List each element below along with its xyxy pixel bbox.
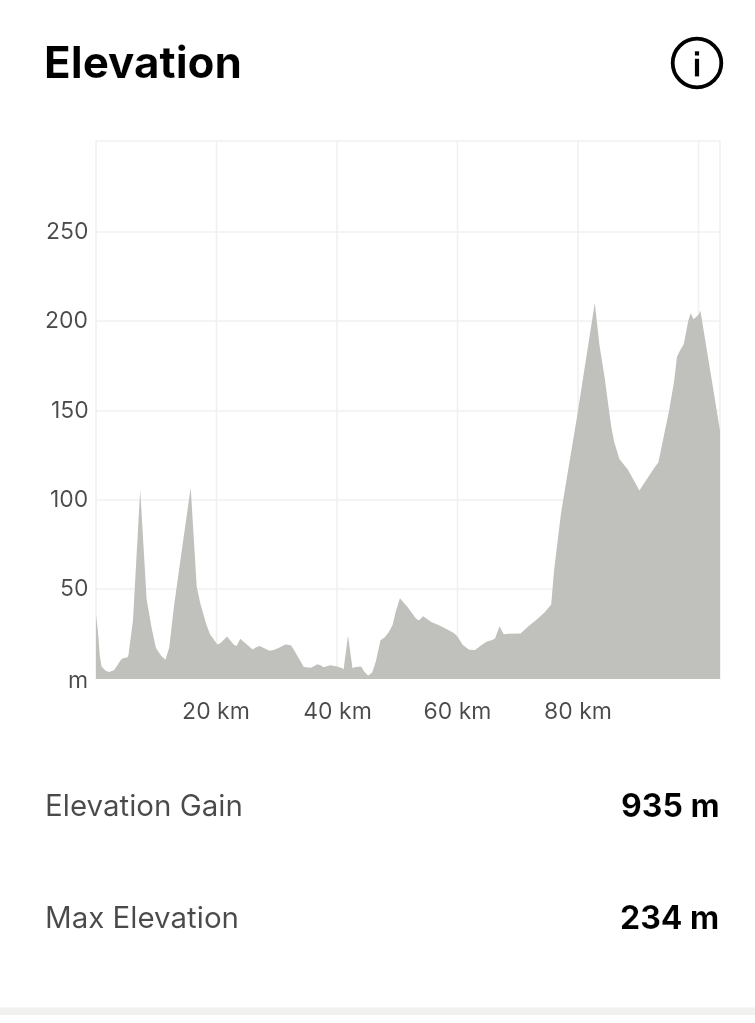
staticText: 50 — [60, 574, 89, 602]
staticText: 20 km — [182, 697, 250, 725]
button[interactable]: Elevation Gain — [0, 749, 755, 861]
staticText: Elevation — [44, 35, 242, 88]
staticText: Max Elevation — [45, 899, 240, 935]
staticText: 60 km — [423, 697, 492, 725]
staticText: 80 km — [544, 697, 612, 725]
staticText: 100 — [50, 485, 89, 513]
staticText: 250 — [46, 217, 89, 245]
staticText: Elevation Gain — [45, 787, 243, 823]
staticText: 234 m — [620, 898, 720, 937]
button[interactable]: Max Elevation — [0, 861, 755, 973]
staticText: 935 m — [621, 786, 720, 825]
staticText: 40 km — [303, 697, 372, 725]
staticText: m — [68, 666, 89, 694]
staticText: 200 — [45, 306, 89, 334]
staticText: 150 — [51, 396, 89, 424]
button[interactable]: Info — [665, 29, 729, 93]
